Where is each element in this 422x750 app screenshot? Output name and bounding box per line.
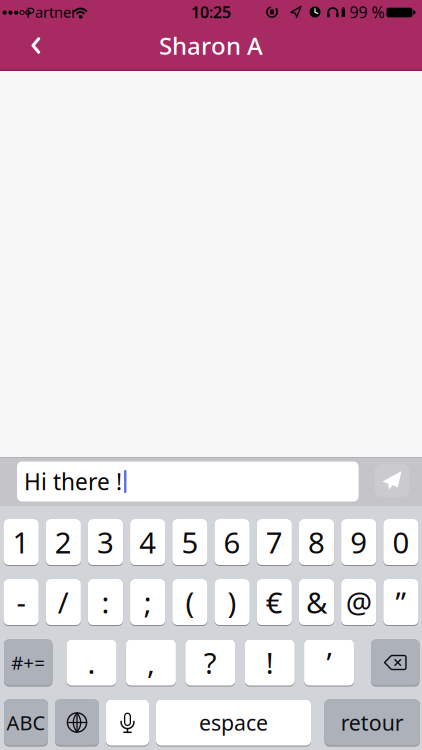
staticText: : [101, 582, 109, 621]
staticText: 3 [97, 522, 114, 561]
staticText: 8 [308, 522, 325, 561]
staticText: , [147, 643, 155, 682]
button[interactable]: 5 [172, 519, 207, 566]
button[interactable]: Send [374, 464, 409, 497]
staticText: Partner [26, 2, 77, 22]
button[interactable]: : [88, 579, 123, 626]
staticText: / [58, 582, 69, 621]
staticText: espace [199, 708, 268, 737]
staticText: 10:25 [191, 1, 231, 23]
button[interactable]: ’ [304, 639, 354, 686]
button[interactable]: 3 [88, 519, 123, 566]
staticText: 7 [266, 522, 283, 561]
button[interactable]: Dictation [106, 699, 149, 746]
button[interactable]: / [46, 579, 81, 626]
button[interactable]: ; [130, 579, 165, 626]
button[interactable]: 9 [341, 519, 376, 566]
staticText: 9 [350, 522, 367, 561]
button[interactable]: ? [185, 639, 235, 686]
staticText: Sharon A [159, 30, 263, 61]
staticText: 6 [224, 522, 241, 561]
button[interactable]: ) [214, 579, 250, 626]
staticText: #+= [11, 650, 45, 675]
button[interactable]: 1 [3, 519, 39, 566]
staticText: 4 [139, 522, 156, 561]
button[interactable]: ABC [4, 699, 48, 746]
staticText: ! [266, 643, 274, 682]
button[interactable]: ” [383, 579, 418, 626]
staticText: Hi there ! [24, 466, 122, 496]
staticText: 99 % [349, 1, 384, 23]
staticText: retour [341, 708, 404, 737]
staticText: ( [185, 582, 194, 621]
staticText: 0 [392, 522, 409, 561]
staticText: & [306, 582, 327, 621]
staticText: € [266, 582, 283, 621]
button[interactable]: Next keyboard [55, 699, 99, 746]
staticText: 1 [13, 522, 30, 561]
button[interactable]: ! [245, 639, 295, 686]
button[interactable]: 8 [299, 519, 334, 566]
staticText: 5 [181, 522, 198, 561]
button[interactable]: @ [341, 579, 376, 626]
button[interactable]: retour [324, 699, 420, 746]
staticText: ABC [6, 709, 45, 736]
staticText: . [87, 643, 95, 682]
button[interactable]: Delete [371, 639, 419, 686]
button[interactable]: , [126, 639, 176, 686]
button[interactable]: 2 [46, 519, 81, 566]
button[interactable]: 4 [130, 519, 165, 566]
button[interactable]: 7 [257, 519, 292, 566]
button[interactable]: & [299, 579, 334, 626]
button[interactable]: 6 [214, 519, 250, 566]
staticText: ; [144, 582, 152, 621]
button[interactable]: . [66, 639, 116, 686]
button[interactable]: € [257, 579, 292, 626]
staticText: @ [346, 582, 372, 621]
staticText: ? [204, 643, 217, 682]
button[interactable]: - [3, 579, 39, 626]
button[interactable]: #+= [4, 639, 52, 686]
staticText: ” [395, 582, 406, 621]
button[interactable]: 0 [383, 519, 418, 566]
staticText: 2 [55, 522, 72, 561]
button[interactable]: ( [172, 579, 207, 626]
staticText: - [17, 582, 26, 621]
button[interactable]: espace [156, 699, 311, 746]
button[interactable]: Back [19, 27, 52, 64]
staticText: ’ [327, 643, 332, 682]
staticText: ) [228, 582, 237, 621]
